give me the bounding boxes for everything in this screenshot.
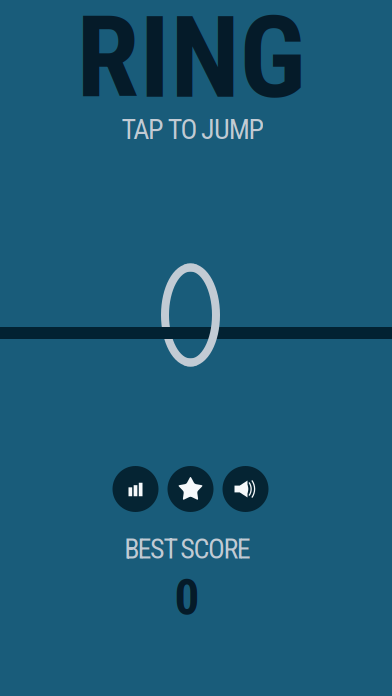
button[interactable]: Rate this game (167, 466, 213, 512)
button[interactable]: Sound on or off (222, 466, 268, 512)
staticText: 0 (174, 569, 199, 627)
staticText: RING (76, 0, 305, 124)
staticText: BEST SCORE (124, 533, 251, 565)
button[interactable]: Leaderboard (112, 466, 158, 512)
staticText: TAP TO JUMP (121, 113, 264, 146)
button[interactable]: Tap to jump (0, 0, 392, 696)
